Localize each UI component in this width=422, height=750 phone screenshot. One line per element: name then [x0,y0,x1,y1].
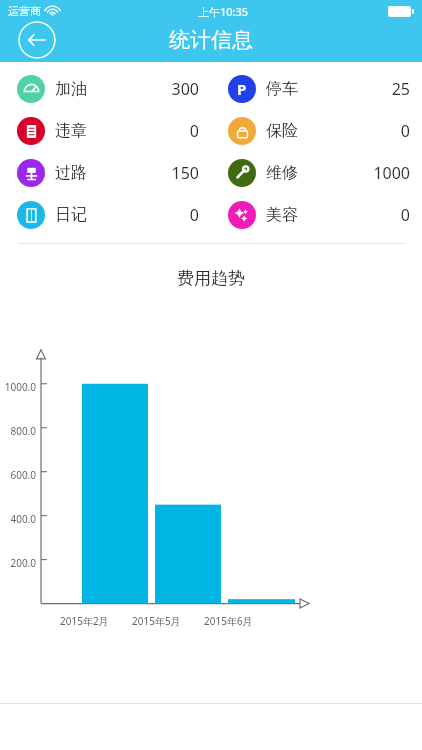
staticText: 费用趋势 [0,268,422,289]
staticText: 400.0 [0,512,36,526]
button[interactable]: 维修 [211,152,422,194]
staticText: 维修 [266,163,298,183]
staticText: 0 [400,204,410,226]
staticText: 150 [171,162,199,184]
button[interactable]: 日记 [0,194,211,236]
staticText: 25 [391,78,410,100]
button[interactable]: P [211,68,422,110]
staticText: 1000.0 [0,380,36,394]
staticText: 600.0 [0,468,36,482]
staticText: 300 [171,78,199,100]
staticText: 上午10:35 [198,4,249,19]
staticText: P [237,79,247,99]
button[interactable]: 过路 [0,152,211,194]
staticText: 0 [189,120,199,142]
staticText: 1000 [373,162,410,184]
staticText: 运营商 [8,4,41,18]
staticText: 0 [400,120,410,142]
staticText: 过路 [55,163,87,183]
staticText: 日记 [55,205,87,225]
button[interactable]: Back [18,21,56,59]
staticText: 200.0 [0,556,36,570]
button[interactable]: 加油 [0,68,211,110]
staticText: 800.0 [0,424,36,438]
staticText: 美容 [266,205,298,225]
staticText: 停车 [266,79,298,99]
staticText: 保险 [266,121,298,141]
staticText: 0 [189,204,199,226]
staticText: 2015年6月 [204,614,253,628]
staticText: 加油 [55,79,87,99]
staticText: 2015年2月 [60,614,109,628]
button[interactable]: 保险 [211,110,422,152]
staticText: 2015年5月 [132,614,181,628]
staticText: 违章 [55,121,87,141]
staticText: 统计信息 [0,27,422,53]
button[interactable]: 违章 [0,110,211,152]
button[interactable]: 美容 [211,194,422,236]
